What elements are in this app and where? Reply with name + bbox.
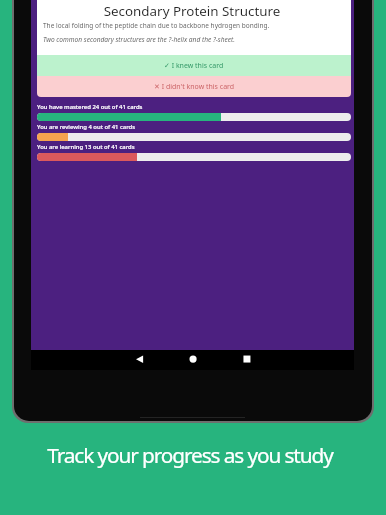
- button[interactable]: Home: [189, 355, 198, 364]
- staticText: You are learning 13 out of 41 cards: [37, 143, 135, 151]
- button[interactable]: Recent apps: [243, 355, 252, 364]
- button[interactable]: ✓ I knew this card: [37, 55, 351, 76]
- staticText: Track your progress as you study: [0, 441, 383, 469]
- button[interactable]: ✕ I didn't know this card: [37, 76, 351, 97]
- staticText: Two common secondary structures are the …: [43, 35, 235, 44]
- button[interactable]: Back: [135, 355, 144, 364]
- staticText: ✓ I knew this card: [164, 61, 224, 71]
- button[interactable]: [37, 0, 351, 55]
- staticText: The local folding of the peptide chain d…: [43, 21, 270, 30]
- staticText: ✕ I didn't know this card: [154, 82, 235, 92]
- staticText: You have mastered 24 out of 41 cards: [37, 103, 143, 111]
- staticText: You are reviewing 4 out of 41 cards: [37, 123, 136, 131]
- staticText: Secondary Protein Structure: [35, 2, 349, 20]
